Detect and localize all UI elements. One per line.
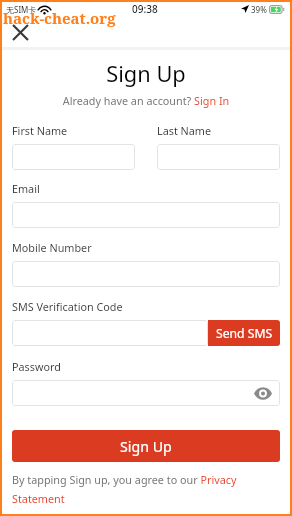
button[interactable]: Show password [252, 382, 274, 404]
button[interactable] [12, 320, 208, 346]
staticText: Already have an account? Sign In [12, 93, 280, 108]
staticText: First Name [12, 123, 68, 138]
button[interactable]: Send SMS [208, 320, 280, 346]
staticText: SMS Verification Code [12, 299, 123, 314]
button[interactable] [12, 261, 280, 287]
button[interactable] [12, 202, 280, 228]
staticText: Sign Up [120, 437, 172, 456]
button[interactable]: Sign Up [12, 430, 280, 462]
button[interactable] [12, 144, 135, 170]
staticText: Email [12, 181, 40, 196]
staticText: 39% [251, 4, 267, 15]
staticText: Password [12, 359, 61, 374]
staticText: By tapping Sign up, you agree to our Pri… [12, 472, 280, 506]
button[interactable] [157, 144, 280, 170]
staticText: 无SIM卡 [6, 4, 37, 15]
staticText: Mobile Number [12, 240, 92, 255]
staticText: Send SMS [216, 325, 273, 342]
staticText: 09:38 [132, 2, 158, 16]
button[interactable]: Close [9, 21, 32, 44]
staticText: Last Name [157, 123, 212, 138]
button[interactable] [12, 380, 280, 406]
staticText: hack-cheat.org [3, 8, 116, 28]
staticText: Sign Up [12, 59, 280, 89]
